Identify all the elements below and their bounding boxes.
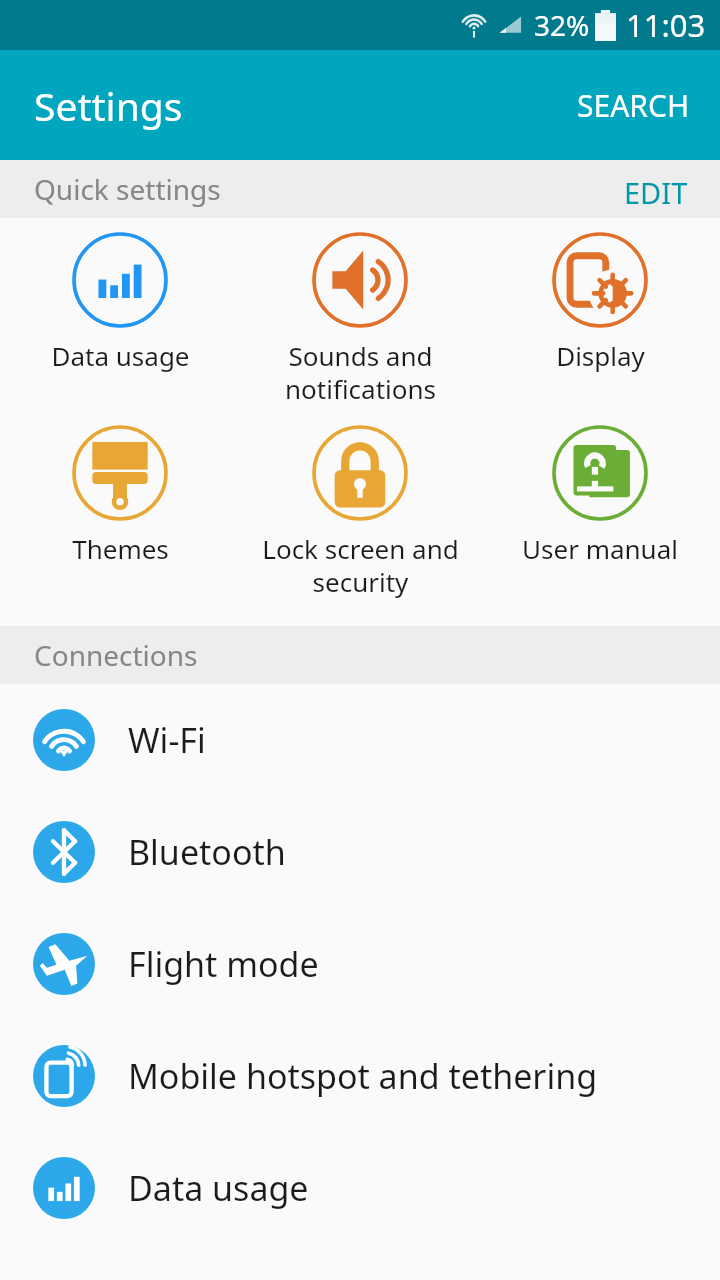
staticText: Quick settings (34, 170, 221, 208)
button[interactable]: Bluetooth (0, 796, 720, 908)
staticText: Mobile hotspot and tethering (128, 1053, 598, 1099)
staticText: Wi-Fi (128, 717, 206, 763)
staticText: Sounds and notifications (285, 338, 436, 407)
button[interactable]: Wi-Fi (0, 684, 720, 796)
staticText: Bluetooth (128, 829, 286, 875)
button[interactable]: Sounds and notifications (240, 232, 480, 407)
button[interactable]: Display (480, 232, 720, 373)
staticText: 11:03 (626, 4, 706, 46)
staticText: Settings (34, 79, 183, 132)
button[interactable]: Data usage (0, 1132, 720, 1244)
staticText: Lock screen and security (262, 531, 459, 600)
button[interactable]: Lock screen and security (240, 425, 480, 600)
button[interactable]: SEARCH (547, 63, 720, 148)
staticText: 32% (534, 6, 590, 44)
staticText: Data usage (128, 1165, 309, 1211)
staticText: Display (556, 338, 645, 373)
staticText: Flight mode (128, 941, 319, 987)
button[interactable]: User manual (480, 425, 720, 566)
button[interactable]: EDIT (592, 160, 720, 218)
staticText: User manual (522, 531, 678, 566)
staticText: SEARCH (577, 85, 690, 126)
staticText: Connections (34, 636, 198, 674)
button[interactable]: Themes (0, 425, 240, 566)
staticText: Data usage (51, 338, 190, 373)
staticText: Themes (72, 531, 169, 566)
button[interactable]: Flight mode (0, 908, 720, 1020)
button[interactable]: Data usage (0, 232, 240, 373)
staticText: EDIT (624, 173, 688, 205)
button[interactable]: Mobile hotspot and tethering (0, 1020, 720, 1132)
